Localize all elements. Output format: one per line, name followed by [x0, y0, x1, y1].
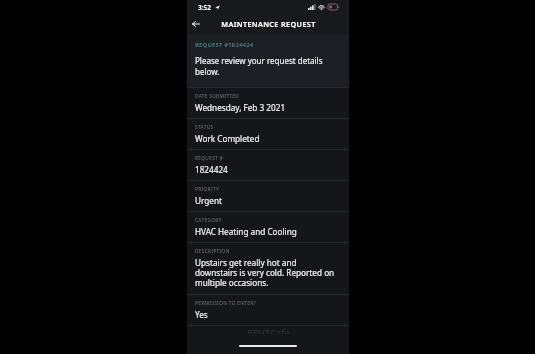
staticText: Wednesday, Feb 3 2021	[195, 102, 286, 113]
button[interactable]: Back	[187, 15, 205, 33]
staticText: STATUS	[195, 124, 214, 131]
staticText: 1824424	[195, 164, 228, 175]
staticText: Please review your request details below…	[195, 55, 341, 77]
button[interactable]: REQUEST #	[187, 150, 349, 180]
staticText: HVAC Heating and Cooling	[195, 226, 297, 237]
staticText: CATEGORY	[195, 217, 222, 224]
button[interactable]: PERMISSION TO ENTER?	[187, 295, 349, 325]
staticText: Yes	[195, 309, 208, 320]
staticText: PRIORITY	[195, 186, 220, 193]
staticText: DESCRIPTION	[195, 248, 230, 255]
staticText: REQUEST #1824424	[195, 41, 254, 49]
button[interactable]: PRIORITY	[187, 181, 349, 211]
staticText: Upstairs get really hot and downstairs i…	[195, 257, 339, 289]
staticText: MAINTENANCE REQUEST	[221, 19, 316, 29]
staticText: RENTCafé	[247, 326, 290, 334]
staticText: DATE SUBMITTED	[195, 93, 240, 100]
staticText: Urgent	[195, 195, 222, 206]
button[interactable]: DESCRIPTION	[187, 243, 349, 294]
button[interactable]: CATEGORY	[187, 212, 349, 242]
button[interactable]: STATUS	[187, 119, 349, 149]
staticText: REQUEST #	[195, 155, 224, 162]
staticText: Work Completed	[195, 133, 260, 144]
button[interactable]: DATE SUBMITTED	[187, 88, 349, 118]
staticText: PERMISSION TO ENTER?	[195, 300, 256, 307]
staticText: 3:52	[198, 3, 211, 12]
